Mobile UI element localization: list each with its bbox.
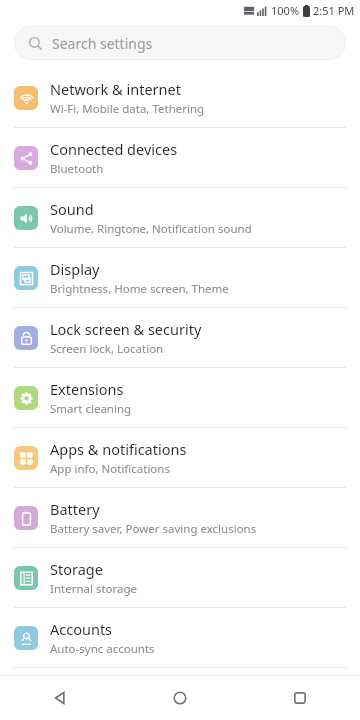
staticText: Screen lock, Location — [50, 341, 164, 357]
staticText: 100% — [271, 3, 300, 18]
button[interactable]: Back — [0, 676, 120, 720]
button[interactable]: Display — [0, 248, 360, 308]
staticText: Extensions — [50, 379, 124, 399]
staticText: Search settings — [52, 34, 153, 53]
staticText: Sound — [50, 199, 94, 219]
staticText: Storage — [50, 559, 103, 579]
staticText: Apps & notifications — [50, 439, 187, 459]
staticText: Internal storage — [50, 581, 138, 597]
button[interactable]: Network & internet — [0, 68, 360, 128]
staticText: Lock screen & security — [50, 319, 202, 339]
button[interactable]: Extensions — [0, 368, 360, 428]
staticText: Battery saver, Power saving exclusions — [50, 521, 257, 537]
button[interactable]: Apps & notifications — [0, 428, 360, 488]
button[interactable]: Search settings — [14, 26, 346, 60]
staticText: Network & internet — [50, 79, 181, 99]
button[interactable]: Connected devices — [0, 128, 360, 188]
staticText: Bluetooth — [50, 161, 104, 177]
staticText: Smart cleaning — [50, 401, 132, 417]
button[interactable]: Accounts — [0, 608, 360, 668]
staticText: Auto-sync accounts — [50, 641, 155, 657]
button[interactable]: Sound — [0, 188, 360, 248]
staticText: Connected devices — [50, 139, 178, 159]
button[interactable]: Battery — [0, 488, 360, 548]
staticText: 2:51 PM — [313, 3, 355, 18]
button[interactable]: Lock screen & security — [0, 308, 360, 368]
staticText: Volume, Ringtone, Notification sound — [50, 221, 252, 237]
button[interactable]: Storage — [0, 548, 360, 608]
button[interactable]: Recent apps — [240, 676, 360, 720]
staticText: App info, Notifications — [50, 461, 170, 477]
staticText: Display — [50, 259, 100, 279]
button[interactable]: Home — [120, 676, 240, 720]
staticText: Accounts — [50, 619, 113, 639]
staticText: Wi-Fi, Mobile data, Tethering — [50, 101, 205, 117]
staticText: Brightness, Home screen, Theme — [50, 281, 229, 297]
staticText: Battery — [50, 499, 100, 519]
